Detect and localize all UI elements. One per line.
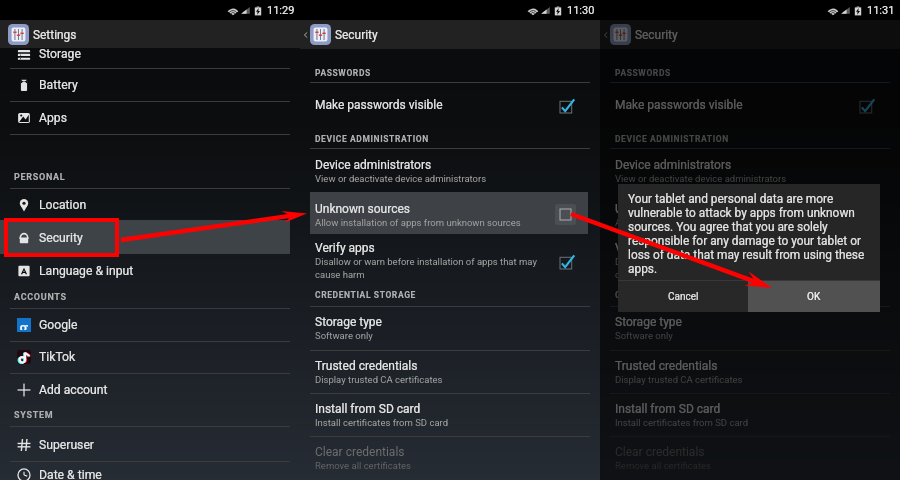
staticText: Display trusted CA certificates: [315, 374, 443, 385]
staticText: Storage: [39, 47, 81, 61]
staticText: Unknown sources: [315, 202, 411, 216]
staticText: SYSTEM: [14, 410, 54, 421]
button[interactable]: Storage type: [600, 313, 900, 351]
button[interactable]: Superuser: [0, 429, 300, 461]
button[interactable]: Language & input: [0, 255, 300, 287]
staticText: Security: [335, 28, 378, 42]
staticText: Remove all certificates: [315, 460, 411, 471]
staticText: Superuser: [39, 438, 94, 452]
button[interactable]: Verify apps: [600, 238, 900, 284]
staticText: View or deactivate device administrators: [615, 173, 787, 184]
button[interactable]: Clear credentials: [300, 443, 600, 480]
button[interactable]: Cancel: [618, 281, 748, 312]
staticText: CREDENTIAL STORAGE: [615, 290, 716, 300]
staticText: Trusted credentials: [315, 359, 418, 373]
button[interactable]: Storage: [0, 38, 300, 70]
button[interactable]: Make passwords visible: [300, 92, 600, 120]
button[interactable]: g: [0, 309, 300, 341]
staticText: Settings: [33, 28, 77, 42]
staticText: g: [19, 316, 29, 330]
staticText: Cancel: [668, 291, 699, 303]
button[interactable]: Install from SD card: [600, 400, 900, 438]
staticText: 11:31: [867, 4, 895, 17]
staticText: Language & input: [39, 264, 134, 278]
staticText: CREDENTIAL STORAGE: [315, 290, 416, 300]
staticText: Your tablet and personal data are more v…: [628, 192, 872, 276]
staticText: Install from SD card: [615, 402, 721, 416]
staticText: Display trusted CA certificates: [615, 374, 743, 385]
staticText: Install from SD card: [315, 402, 421, 416]
button[interactable]: Trusted credentials: [600, 357, 900, 395]
staticText: Clear credentials: [315, 445, 405, 459]
button[interactable]: Install from SD card: [300, 400, 600, 438]
staticText: Clear credentials: [615, 445, 705, 459]
staticText: PASSWORDS: [315, 68, 371, 78]
button[interactable]: TikTok: [0, 341, 300, 373]
staticText: Disallow or warn before installation of …: [315, 256, 537, 281]
button[interactable]: OK: [748, 281, 880, 312]
button[interactable]: Storage type: [300, 313, 600, 351]
staticText: Add account: [39, 383, 108, 397]
staticText: Make passwords visible: [615, 98, 743, 112]
button[interactable]: Security: [0, 222, 300, 254]
staticText: Date & time: [39, 468, 102, 480]
button[interactable]: Unknown sources: [600, 192, 900, 234]
button[interactable]: Trusted credentials: [300, 357, 600, 395]
button[interactable]: Add account: [0, 374, 300, 406]
staticText: Battery: [39, 78, 78, 92]
button[interactable]: Back: [302, 31, 310, 39]
staticText: DEVICE ADMINISTRATION: [315, 134, 429, 144]
staticText: Remove all certificates: [615, 460, 711, 471]
staticText: PERSONAL: [14, 172, 66, 183]
button[interactable]: [0, 220, 290, 254]
staticText: Security: [635, 28, 678, 42]
button[interactable]: Device administrators: [300, 155, 600, 191]
staticText: Apps: [39, 111, 67, 125]
staticText: Device administrators: [615, 158, 732, 172]
staticText: 11:30: [567, 4, 595, 17]
button[interactable]: Location: [0, 189, 300, 221]
staticText: Software only: [315, 330, 373, 341]
button[interactable]: Verify apps: [300, 238, 600, 284]
staticText: Allow installation of apps from unknown …: [315, 217, 521, 228]
staticText: TikTok: [39, 350, 76, 364]
staticText: Location: [39, 198, 87, 212]
staticText: Trusted credentials: [615, 359, 718, 373]
button[interactable]: Date & time: [0, 459, 300, 480]
staticText: Allow installation of apps from unknown …: [615, 217, 821, 228]
button[interactable]: Clear credentials: [600, 443, 900, 480]
staticText: Device administrators: [315, 158, 432, 172]
staticText: Verify apps: [615, 241, 675, 255]
staticText: Make passwords visible: [315, 98, 443, 112]
staticText: OK: [807, 291, 821, 303]
staticText: Security: [39, 231, 83, 245]
staticText: Google: [39, 318, 78, 332]
button[interactable]: Battery: [0, 69, 300, 101]
staticText: Verify apps: [315, 241, 375, 255]
staticText: DEVICE ADMINISTRATION: [615, 134, 729, 144]
button[interactable]: Apps: [0, 102, 300, 134]
button[interactable]: Device administrators: [600, 155, 900, 191]
staticText: Install certificates from SD card: [315, 417, 449, 428]
button[interactable]: [310, 192, 588, 234]
staticText: View or deactivate device administrators: [315, 173, 487, 184]
staticText: Disallow or warn before installation of …: [615, 256, 837, 281]
staticText: Software only: [615, 330, 673, 341]
staticText: Storage type: [315, 315, 382, 329]
staticText: Unknown sources: [615, 202, 711, 216]
staticText: ACCOUNTS: [14, 292, 67, 303]
staticText: Install certificates from SD card: [615, 417, 749, 428]
button[interactable]: Make passwords visible: [600, 92, 900, 120]
button[interactable]: Unknown sources: [300, 192, 600, 234]
button[interactable]: Back: [602, 31, 610, 39]
staticText: PASSWORDS: [615, 68, 671, 78]
staticText: Storage type: [615, 315, 682, 329]
staticText: 11:29: [267, 4, 295, 17]
